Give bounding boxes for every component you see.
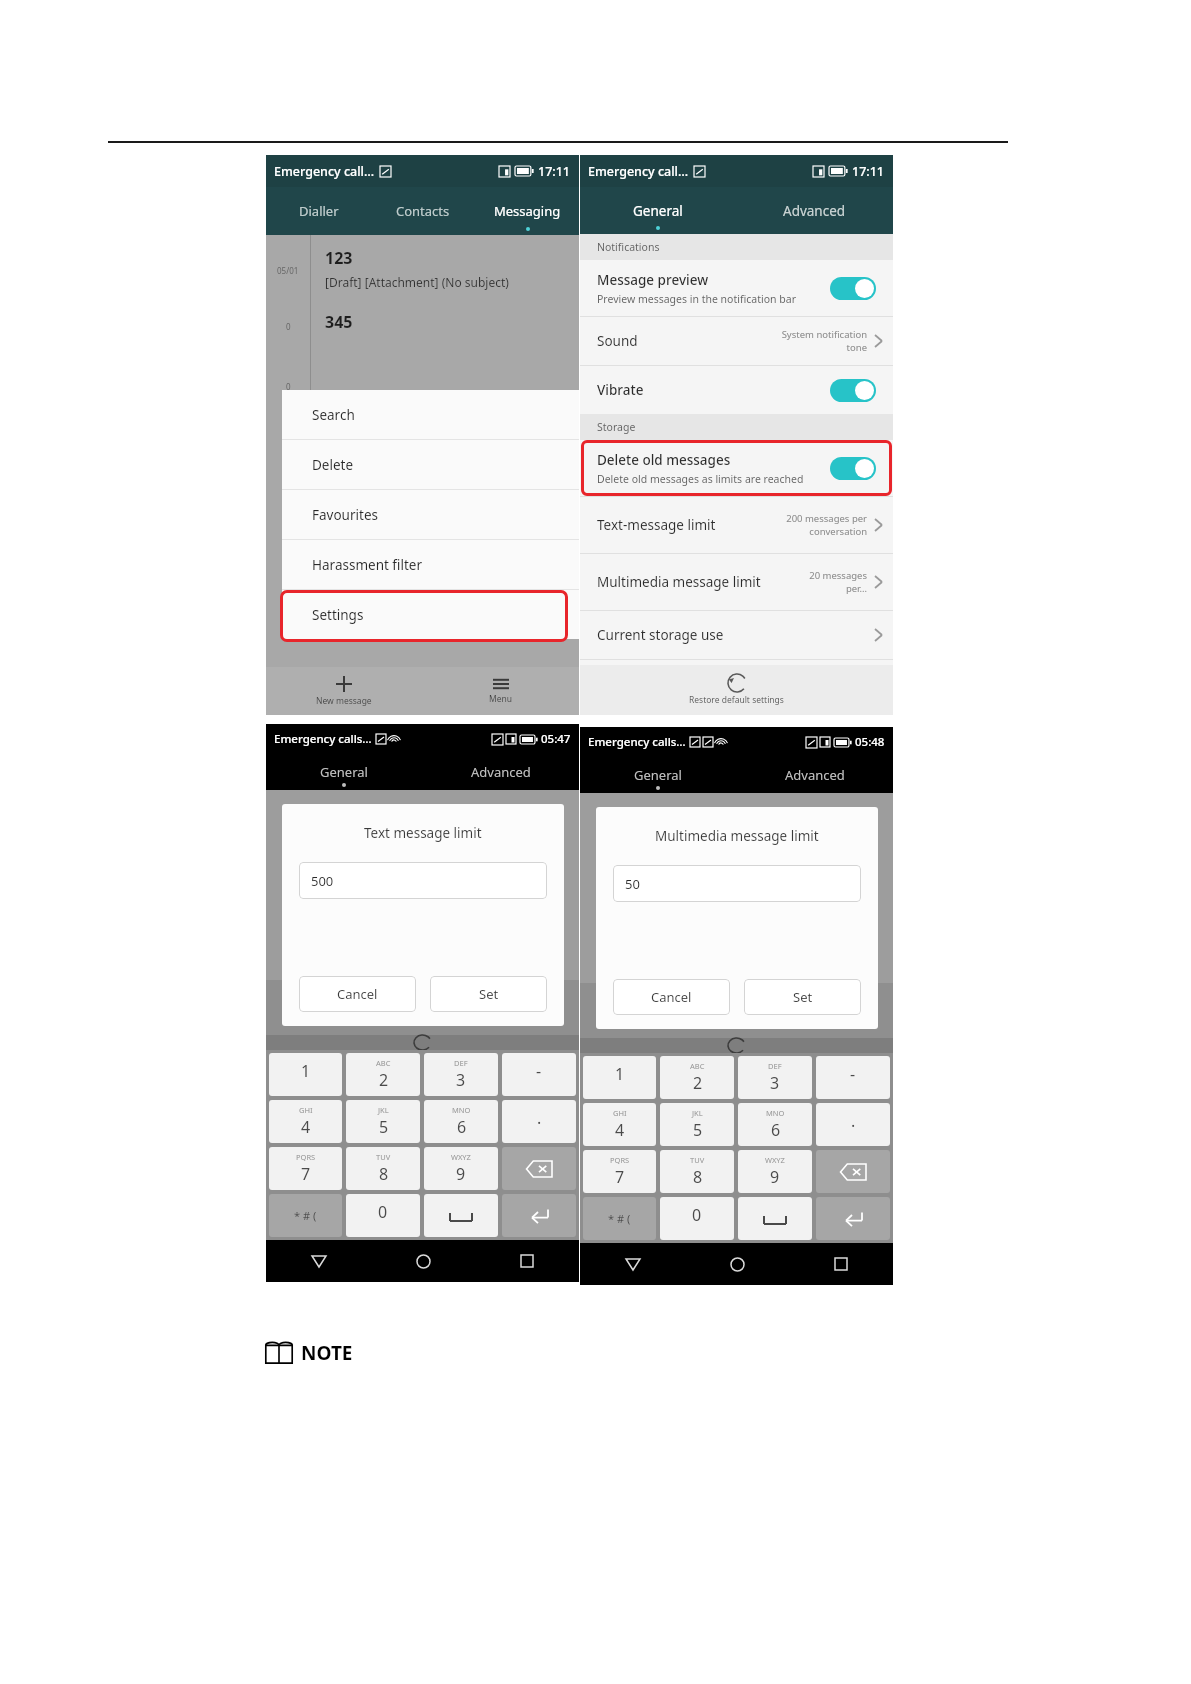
button[interactable]: Set — [430, 976, 547, 1012]
button[interactable]: Advanced — [736, 187, 893, 234]
staticText: MNO — [452, 1105, 471, 1115]
button[interactable]: Space — [738, 1197, 812, 1240]
staticText: 20 messages per… — [809, 569, 867, 595]
button[interactable]: * # ( — [583, 1197, 656, 1240]
staticText: Preview messages in the notification bar — [597, 292, 796, 306]
button[interactable]: Favourites — [282, 490, 579, 539]
button[interactable]: Toggle on — [830, 457, 876, 480]
staticText: 6 — [771, 1119, 781, 1141]
button[interactable]: Space — [424, 1194, 498, 1237]
button[interactable]: 1 — [583, 1056, 656, 1099]
button[interactable]: 1 — [269, 1053, 342, 1096]
button[interactable]: Cancel — [299, 976, 416, 1012]
button[interactable]: Multimedia message limit — [580, 554, 893, 610]
button[interactable]: Back — [580, 1243, 685, 1285]
button[interactable]: Advanced — [422, 754, 579, 790]
button[interactable]: Set — [744, 979, 861, 1015]
button[interactable]: Advanced — [736, 757, 893, 793]
button[interactable]: Current storage use — [580, 611, 893, 659]
staticText: Vibrate — [597, 381, 644, 399]
button[interactable]: ABC — [660, 1056, 734, 1099]
staticText: System notification tone — [772, 328, 867, 354]
staticText: DEF — [768, 1061, 782, 1071]
button[interactable]: 50 — [613, 865, 861, 902]
button[interactable]: Recents — [475, 1240, 579, 1282]
button[interactable]: Dialler — [266, 187, 371, 235]
staticText: Harassment filter — [312, 556, 423, 574]
staticText: 4 — [301, 1116, 311, 1138]
button[interactable]: Harassment filter — [282, 540, 579, 589]
other: Enter — [843, 1211, 863, 1227]
button[interactable]: Contacts — [371, 187, 475, 235]
staticText: Advanced — [785, 766, 845, 784]
button[interactable]: 0 — [346, 1194, 420, 1237]
staticText: 3 — [456, 1069, 466, 1091]
button[interactable]: DEF — [738, 1056, 812, 1099]
button[interactable]: DEF — [424, 1053, 498, 1096]
button[interactable]: GHI — [583, 1103, 656, 1146]
button[interactable]: JKL — [346, 1100, 420, 1143]
staticText: Current storage use — [597, 626, 867, 644]
button[interactable]: Text-message limit — [580, 497, 893, 553]
staticText: 2 — [379, 1069, 389, 1091]
button[interactable]: Sound — [580, 317, 893, 365]
staticText: Favourites — [312, 506, 378, 524]
button[interactable]: Search — [282, 390, 579, 439]
button[interactable]: ABC — [346, 1053, 420, 1096]
button[interactable]: Enter — [502, 1194, 576, 1237]
button[interactable]: PQRS — [269, 1147, 342, 1190]
button[interactable]: PQRS — [583, 1150, 656, 1193]
staticText: - — [850, 1063, 856, 1085]
button[interactable]: Backspace — [502, 1147, 576, 1190]
button[interactable]: General — [580, 187, 736, 234]
button[interactable]: New message — [266, 667, 422, 715]
other: Restore default settings — [728, 674, 746, 692]
button[interactable]: WXYZ — [424, 1147, 498, 1190]
button[interactable]: TUV — [346, 1147, 420, 1190]
button[interactable]: * # ( — [269, 1194, 342, 1237]
button[interactable]: . — [816, 1103, 890, 1146]
staticText: 50 — [625, 875, 640, 893]
button[interactable]: Toggle on — [830, 277, 876, 300]
button[interactable]: Message preview — [580, 260, 893, 316]
button[interactable]: GHI — [269, 1100, 342, 1143]
staticText: 05/01 — [277, 265, 299, 276]
staticText: Notifications — [597, 240, 660, 254]
other: Space — [764, 1214, 786, 1224]
button[interactable]: Home — [685, 1243, 789, 1285]
button[interactable]: - — [502, 1053, 576, 1096]
button[interactable]: Delete old messages — [580, 440, 893, 496]
staticText: PQRS — [610, 1155, 630, 1165]
button[interactable]: Delete — [282, 440, 579, 489]
button[interactable]: General — [266, 754, 422, 790]
staticText: Delete old messages — [597, 451, 731, 469]
staticText: NOTE — [301, 1340, 353, 1366]
button[interactable]: Back — [266, 1240, 371, 1282]
staticText: Restore default settings — [689, 694, 784, 706]
button[interactable]: - — [816, 1056, 890, 1099]
button[interactable]: General — [580, 757, 736, 793]
button[interactable]: Menu — [422, 667, 579, 715]
button[interactable]: TUV — [660, 1150, 734, 1193]
button[interactable]: 500 — [299, 862, 547, 899]
button[interactable]: WXYZ — [738, 1150, 812, 1193]
button[interactable]: Recents — [789, 1243, 893, 1285]
button[interactable]: Settings — [282, 590, 579, 639]
button[interactable]: . — [502, 1100, 576, 1143]
button[interactable]: JKL — [660, 1103, 734, 1146]
button[interactable]: MNO — [424, 1100, 498, 1143]
button[interactable]: Toggle on — [830, 379, 876, 402]
staticText: 8 — [379, 1163, 389, 1185]
button[interactable]: Backspace — [816, 1150, 890, 1193]
button[interactable]: Vibrate — [580, 366, 893, 414]
staticText: GHI — [299, 1105, 313, 1115]
staticText: Set — [793, 988, 813, 1006]
button[interactable]: 0 — [660, 1197, 734, 1240]
button[interactable]: Messaging — [475, 187, 579, 235]
staticText: 6 — [457, 1116, 467, 1138]
button[interactable]: Cancel — [613, 979, 730, 1015]
button[interactable]: Restore default settings — [580, 665, 893, 715]
button[interactable]: Home — [371, 1240, 475, 1282]
button[interactable]: Enter — [816, 1197, 890, 1240]
button[interactable]: MNO — [738, 1103, 812, 1146]
